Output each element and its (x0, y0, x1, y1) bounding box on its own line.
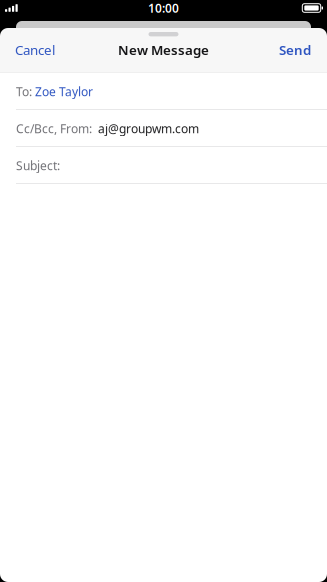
button[interactable]: Cancel (0, 34, 67, 66)
staticText: aj@groupwm.com (98, 120, 199, 136)
button[interactable]: Cc/Bcc, From: (0, 110, 327, 147)
staticText: Cc/Bcc, From: (16, 120, 98, 136)
staticText: New Message (118, 41, 209, 59)
staticText: To: (16, 83, 35, 99)
staticText: Subject: (16, 157, 60, 173)
staticText: Send (279, 41, 311, 59)
staticText: 10:00 (148, 0, 179, 16)
button[interactable]: Send (267, 34, 327, 66)
button[interactable]: Subject: (0, 147, 327, 184)
staticText: Cancel (15, 41, 55, 59)
button[interactable]: To: (0, 73, 327, 110)
staticText: Zoe Taylor (35, 83, 93, 99)
